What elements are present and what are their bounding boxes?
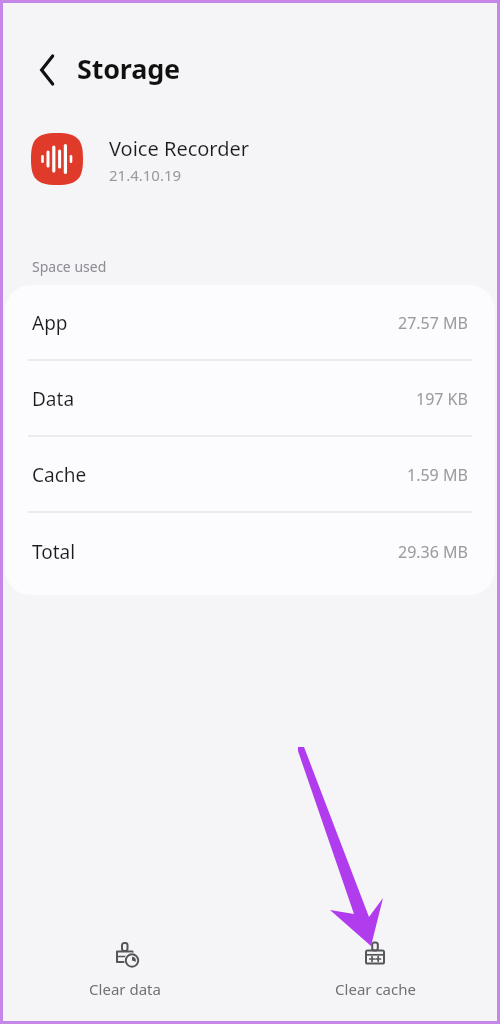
- staticText: Voice Recorder: [109, 135, 250, 162]
- button[interactable]: App: [5, 285, 495, 361]
- staticText: Space used: [32, 257, 107, 276]
- staticText: 29.36 MB: [398, 541, 468, 563]
- staticText: 27.57 MB: [398, 312, 468, 334]
- staticText: 21.4.10.19: [109, 165, 182, 185]
- button[interactable]: Total: [5, 513, 495, 591]
- staticText: Total: [32, 539, 76, 565]
- staticText: Clear cache: [335, 979, 416, 999]
- button[interactable]: Back: [26, 48, 70, 92]
- button[interactable]: Data: [5, 361, 495, 437]
- staticText: Clear data: [89, 979, 161, 999]
- staticText: 197 KB: [416, 388, 468, 410]
- staticText: Data: [32, 386, 75, 412]
- button[interactable]: Clear cache: [250, 924, 500, 1024]
- button[interactable]: Cache: [5, 437, 495, 513]
- staticText: Cache: [32, 462, 87, 488]
- staticText: App: [32, 310, 68, 336]
- staticText: Storage: [77, 50, 180, 87]
- button[interactable]: Clear data: [0, 924, 250, 1024]
- staticText: 1.59 MB: [407, 464, 468, 486]
